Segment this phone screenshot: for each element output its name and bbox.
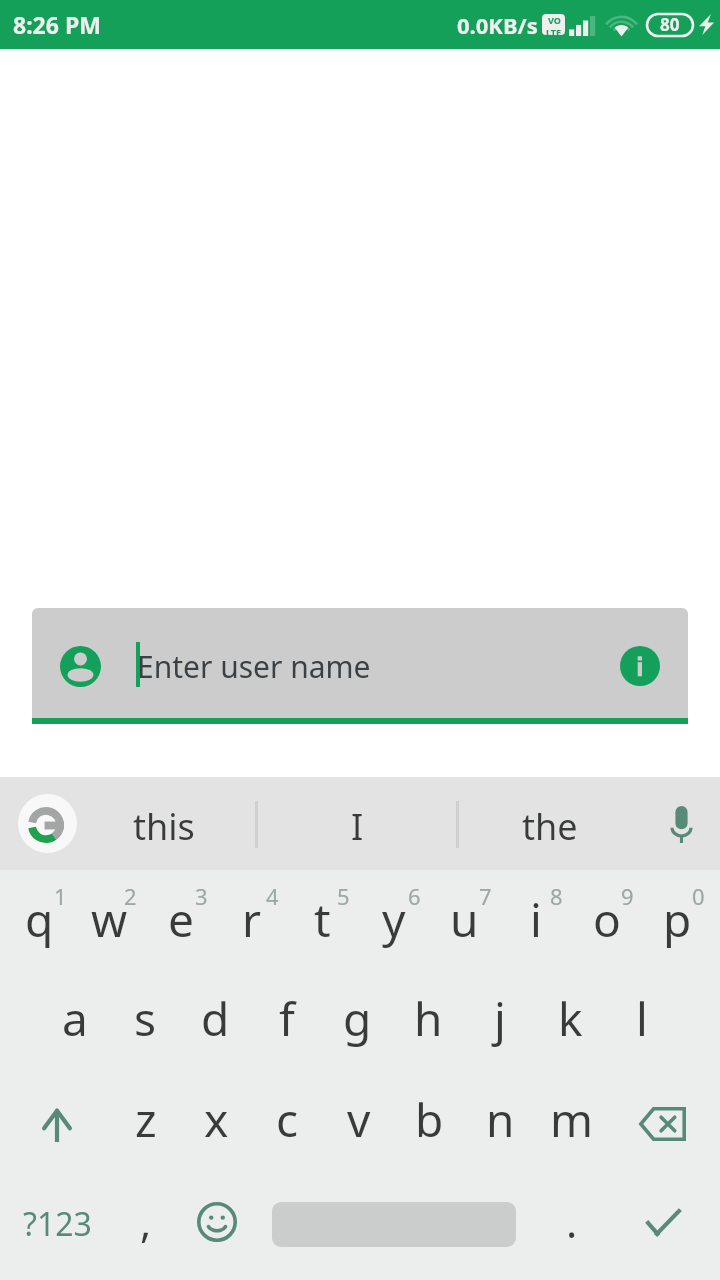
button[interactable]: g [322,973,393,1076]
staticText: 7 [479,881,492,911]
staticText: 8 [550,881,563,911]
staticText: e [168,888,194,951]
staticText: 5 [337,881,350,911]
button[interactable]: t [287,870,358,973]
button[interactable]: this [104,777,224,870]
staticText: the [522,802,578,851]
button[interactable]: n [465,1076,536,1178]
staticText: w [91,888,128,951]
staticText: 0.0KB/s [457,10,538,40]
button[interactable]: u [429,870,500,973]
staticText: 6 [408,881,421,911]
staticText: b [415,1088,444,1151]
button[interactable]: f [251,973,322,1076]
staticText: LTE [546,26,562,35]
button[interactable]: k [535,973,606,1076]
staticText: Enter user name [137,646,371,687]
staticText: 2 [124,881,137,911]
staticText: m [550,1088,594,1151]
staticText: . [566,1193,578,1250]
button[interactable]: Voice input [642,777,720,870]
staticText: this [133,802,195,851]
button[interactable]: a [40,973,110,1076]
staticText: h [414,987,443,1050]
staticText: q [25,888,54,951]
staticText: x [204,1088,229,1151]
button[interactable]: Emoji [181,1178,252,1280]
staticText: g [343,987,372,1050]
staticText: 3 [195,881,208,911]
button[interactable]: i [500,870,571,973]
staticText: 4 [266,881,279,911]
button[interactable]: q [4,870,74,973]
button[interactable]: o [571,870,642,973]
button[interactable]: z [110,1076,181,1178]
staticText: 9 [621,881,634,911]
staticText: z [135,1088,157,1151]
button[interactable]: h [393,973,464,1076]
staticText: n [486,1088,515,1151]
button[interactable]: . [536,1178,607,1280]
staticText: r [242,888,261,951]
staticText: 80 [660,13,680,36]
staticText: y [382,888,406,951]
button[interactable]: d [180,973,251,1076]
staticText: u [450,888,479,951]
staticText: s [134,987,157,1050]
button[interactable]: the [461,777,639,870]
staticText: 1 [54,881,67,911]
staticText: k [558,987,583,1050]
button[interactable]: e [145,870,216,973]
button[interactable]: Space [252,1178,536,1280]
button[interactable]: Info [620,646,660,686]
staticText: 8:26 PM [13,9,101,40]
button[interactable]: w [74,870,145,973]
button[interactable]: s [110,973,180,1076]
staticText: o [593,888,621,951]
staticText: d [201,987,230,1050]
staticText: f [279,987,295,1050]
button[interactable]: l [606,973,677,1076]
button[interactable]: Google Search [18,794,77,853]
staticText: I [351,802,364,851]
button[interactable]: r [216,870,287,973]
button[interactable]: c [252,1076,323,1178]
staticText: v [347,1088,371,1151]
button[interactable]: j [464,973,535,1076]
button[interactable]: v [323,1076,394,1178]
staticText: , [140,1193,152,1250]
button[interactable]: x [181,1076,252,1178]
button[interactable]: b [394,1076,465,1178]
staticText: p [663,888,692,951]
button[interactable]: I [262,777,452,870]
staticText: c [276,1088,299,1151]
button[interactable]: ?123 [4,1178,110,1280]
staticText: t [314,888,331,951]
button[interactable]: m [536,1076,607,1178]
staticText: j [494,987,506,1050]
staticText: l [636,987,648,1050]
staticText: 0 [692,881,705,911]
button[interactable]: Backspace [607,1076,713,1178]
button[interactable]: p [642,870,713,973]
staticText: ?123 [23,1202,92,1246]
button[interactable]: , [110,1178,181,1280]
staticText: VO [548,14,561,26]
staticText: a [62,987,88,1050]
button[interactable]: Shift [4,1076,110,1178]
staticText: i [530,888,542,951]
button[interactable]: y [358,870,429,973]
button[interactable]: Enter [607,1178,713,1280]
button[interactable]: Enter user name [32,608,688,718]
